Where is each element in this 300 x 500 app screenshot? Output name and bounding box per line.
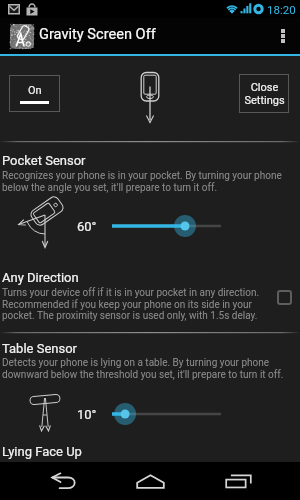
button[interactable]: Angle slider [106, 201, 227, 251]
button[interactable]: Angle slider [106, 389, 227, 439]
staticText: 60° [77, 219, 97, 234]
button[interactable]: Any Direction checkbox [272, 285, 296, 309]
staticText: Table Sensor [2, 341, 78, 356]
staticText: Any Direction [2, 270, 79, 285]
staticText: 10° [77, 407, 97, 422]
staticText: Pocket Sensor [2, 153, 86, 168]
button[interactable]: Recent apps [206, 462, 271, 500]
button[interactable]: Back [30, 462, 95, 500]
button[interactable]: On [9, 75, 60, 112]
button[interactable]: Close Settings [239, 74, 289, 113]
staticText: Turns your device off if it is in your p… [2, 287, 268, 322]
staticText: On [28, 84, 42, 97]
staticText: Detects your phone is lying on a table. … [2, 357, 297, 381]
staticText: Recognizes your phone is in your pocket.… [2, 170, 294, 194]
staticText: Gravity Screen Off [39, 25, 156, 42]
button[interactable]: More options [266, 18, 300, 54]
staticText: Close Settings [244, 81, 285, 107]
staticText: 18:20 [267, 3, 296, 16]
button[interactable]: Home [118, 462, 183, 500]
staticText: Lying Face Up [2, 444, 82, 459]
